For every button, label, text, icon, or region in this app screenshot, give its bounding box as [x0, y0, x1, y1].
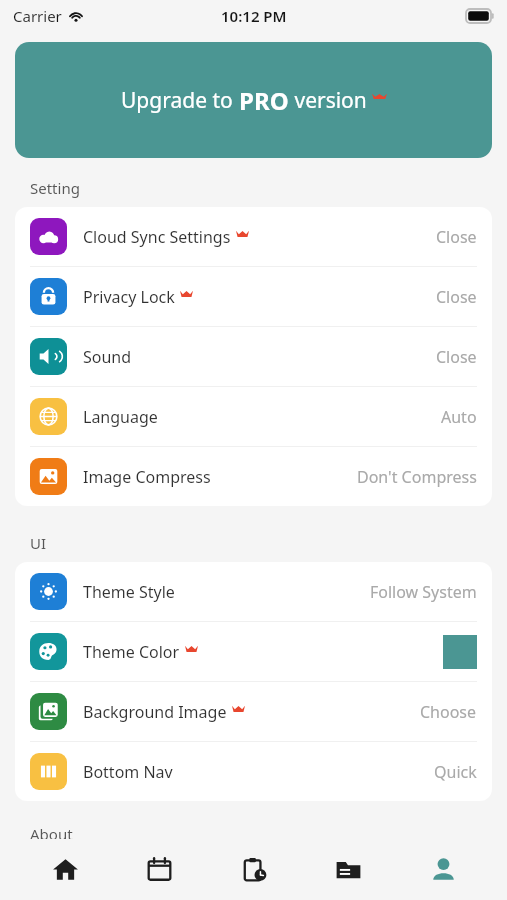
button[interactable]: Calendar — [129, 839, 189, 900]
staticText: Cloud Sync Settings — [83, 226, 231, 248]
button[interactable]: Tasks — [224, 839, 284, 900]
staticText: Close — [436, 346, 477, 368]
staticText: version — [289, 86, 367, 115]
staticText: Theme Style — [83, 581, 175, 603]
staticText: Background Image — [83, 701, 227, 723]
button[interactable]: Cloud Sync Settings — [15, 207, 492, 266]
staticText: Sound — [83, 346, 132, 368]
staticText: Language — [83, 406, 158, 428]
button[interactable]: Profile — [413, 839, 473, 900]
button[interactable]: Theme Style — [15, 562, 492, 621]
staticText: Follow System — [370, 581, 477, 603]
button[interactable]: Home — [35, 839, 95, 900]
staticText: Carrier — [13, 6, 62, 26]
button[interactable]: Sound — [15, 327, 492, 386]
button[interactable]: Language — [15, 387, 492, 446]
staticText: 10:12 PM — [221, 6, 287, 26]
staticText: Auto — [441, 406, 477, 428]
staticText: About — [30, 824, 73, 839]
staticText: Privacy Lock — [83, 286, 175, 308]
button[interactable]: Background Image — [15, 682, 492, 741]
staticText: Close — [436, 226, 477, 248]
staticText: Bottom Nav — [83, 761, 173, 783]
staticText: Quick — [434, 761, 477, 783]
staticText: Upgrade to — [121, 86, 239, 115]
button[interactable]: Privacy Lock — [15, 267, 492, 326]
staticText: UI — [30, 533, 47, 553]
staticText: Choose — [420, 701, 477, 723]
button[interactable]: Theme Color — [15, 622, 492, 681]
staticText: Close — [436, 286, 477, 308]
button[interactable]: Files — [318, 839, 378, 900]
staticText: PRO — [239, 84, 289, 117]
staticText: Setting — [30, 178, 80, 198]
button[interactable]: Upgrade to — [15, 42, 492, 158]
staticText: Image Compress — [83, 466, 211, 488]
button[interactable]: Image Compress — [15, 447, 492, 506]
staticText: Theme Color — [83, 641, 180, 663]
staticText: Don't Compress — [357, 466, 477, 488]
button[interactable]: Bottom Nav — [15, 742, 492, 801]
